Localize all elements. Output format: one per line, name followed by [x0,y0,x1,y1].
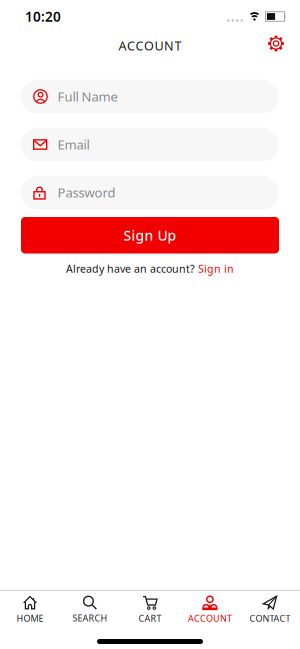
button[interactable]: Full Name [21,79,279,113]
button[interactable]: ACCOUNT [180,595,240,624]
staticText: CART [138,612,161,624]
staticText: Email [57,136,89,153]
staticText: HOME [16,612,43,624]
button[interactable]: Password [21,175,279,209]
staticText: Full Name [57,88,117,105]
staticText: Sign Up [123,226,176,244]
button[interactable]: Sign in [198,261,234,276]
staticText: ACCOUNT [188,612,232,624]
button[interactable]: CONTACT [240,595,300,624]
staticText: Sign in [198,261,234,276]
button[interactable]: Sign Up [21,217,279,253]
staticText: Password [57,184,115,201]
button[interactable]: Settings [267,35,284,52]
staticText: CONTACT [249,612,290,624]
button[interactable]: Email [21,127,279,161]
button[interactable]: HOME [0,595,60,624]
button[interactable]: CART [120,595,180,624]
button[interactable]: SEARCH [60,595,120,624]
staticText: SEARCH [72,612,107,624]
staticText: ACCOUNT [118,37,181,54]
staticText: 10:20 [25,7,61,26]
staticText: Already have an account? [66,261,195,276]
